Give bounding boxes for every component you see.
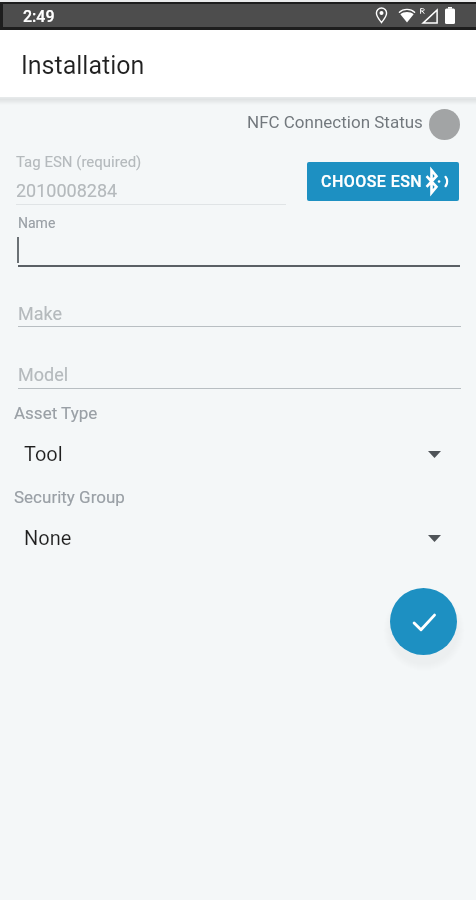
staticText: Make <box>18 303 62 324</box>
staticText: NFC Connection Status <box>247 112 423 132</box>
staticText: 2:49 <box>23 7 55 26</box>
button[interactable]: CHOOSE ESN <box>307 162 459 201</box>
staticText: None <box>24 526 72 549</box>
staticText: Tool <box>24 442 63 465</box>
staticText: Name <box>18 215 56 231</box>
staticText: Installation <box>21 51 145 80</box>
staticText: CHOOSE ESN <box>321 172 423 191</box>
button[interactable]: None <box>0 516 476 562</box>
staticText: 2010008284 <box>16 180 118 201</box>
staticText: Tag ESN (required) <box>16 153 142 171</box>
button[interactable]: Tool <box>0 432 476 478</box>
staticText: Model <box>18 364 69 385</box>
staticText: Asset Type <box>14 403 98 423</box>
staticText: Security Group <box>14 487 125 507</box>
button[interactable]: Save <box>390 588 457 655</box>
